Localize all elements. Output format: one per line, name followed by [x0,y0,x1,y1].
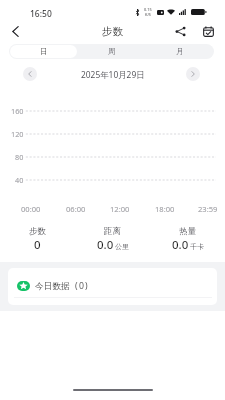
staticText: 16:50 [30,8,52,20]
staticText: 月 [176,47,184,56]
staticText: 40 [15,175,24,185]
staticText: 0 [79,280,84,292]
staticText: ( [75,280,78,292]
button[interactable]: Next day [186,67,200,81]
staticText: K/S [145,12,151,17]
staticText: 周 [108,47,116,56]
staticText: 步数 [102,25,123,38]
button[interactable]: 月 [147,45,213,58]
staticText: 热量 [179,226,196,237]
staticText: 公里 [115,242,129,251]
staticText: 00:00 [21,204,41,214]
staticText: 日 [40,47,48,56]
staticText: 12:00 [110,204,130,214]
staticText: 160 [11,106,24,116]
staticText: 千卡 [190,242,204,251]
staticText: 步数 [29,226,46,237]
button[interactable]: Back [4,20,26,42]
staticText: 今日数据 [35,281,70,292]
staticText: 0 [34,237,41,253]
staticText: 18:00 [155,204,175,214]
staticText: 0.0 [97,237,114,253]
staticText: 06:00 [66,204,86,214]
button[interactable]: Share [171,22,189,40]
staticText: 距离 [104,226,121,237]
staticText: 80 [15,152,24,162]
button[interactable]: Previous day [23,67,37,81]
staticText: 0.15 [144,7,152,12]
button[interactable]: Calendar [199,22,217,40]
staticText: 120 [11,129,24,139]
staticText: 0.0 [172,237,189,253]
staticText: 23:59 [198,204,218,214]
button[interactable]: 周 [79,45,145,58]
staticText: ) [85,280,88,292]
button[interactable]: 今日数据 [8,268,217,305]
staticText: 2025年10月29日 [81,69,145,80]
button[interactable]: 日 [10,45,77,58]
